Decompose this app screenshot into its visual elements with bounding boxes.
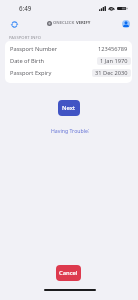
staticText: 1 Jan 1970 — [100, 57, 128, 65]
staticText: Passport Number — [10, 45, 58, 53]
button[interactable]: 1 Jan 1970 — [97, 57, 131, 65]
staticText: Date of Birth — [10, 57, 45, 65]
staticText: 31 Dec 2030 — [95, 69, 128, 77]
button[interactable]: Cancel — [56, 265, 81, 281]
staticText: ONECLICK — [53, 20, 75, 26]
staticText: Next — [62, 104, 76, 112]
staticText: Passport Expiry — [10, 69, 52, 77]
staticText: VERIFY — [76, 20, 91, 26]
button[interactable]: 31 Dec 2030 — [92, 69, 131, 77]
staticText: Having Trouble? — [51, 127, 89, 134]
staticText: 123456789 — [98, 45, 128, 53]
staticText: 6:49 — [19, 4, 32, 12]
staticText: Cancel — [59, 269, 78, 277]
button[interactable]: Refresh — [8, 18, 20, 30]
button[interactable]: Having Trouble? — [51, 125, 89, 135]
button[interactable]: 123456789 — [95, 45, 131, 53]
staticText: PASSPORT INFO — [9, 35, 42, 41]
button[interactable]: Account — [120, 18, 132, 30]
button[interactable]: Next — [58, 100, 80, 116]
